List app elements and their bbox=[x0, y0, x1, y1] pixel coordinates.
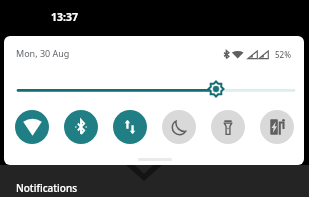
staticText: Mon, 30 Aug bbox=[16, 47, 70, 59]
staticText: 52% bbox=[275, 49, 291, 60]
button[interactable]: Bluetooth bbox=[64, 110, 98, 144]
button[interactable]: Mobile data bbox=[113, 110, 147, 144]
staticText: Notifications bbox=[16, 181, 78, 195]
button[interactable]: Battery saver bbox=[260, 110, 294, 144]
button[interactable]: Wi-Fi bbox=[15, 110, 49, 144]
button[interactable]: Do not disturb bbox=[162, 110, 196, 144]
staticText: 13:37 bbox=[51, 10, 78, 24]
button[interactable]: Flashlight bbox=[211, 110, 245, 144]
